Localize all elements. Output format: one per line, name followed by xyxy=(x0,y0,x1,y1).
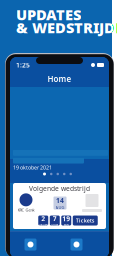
staticText: Home xyxy=(47,74,71,84)
staticText: 1:25 xyxy=(16,61,30,69)
staticText: 19 oktober 2021 xyxy=(13,164,52,171)
staticText: KRC Genk xyxy=(17,207,34,213)
staticText: UREN xyxy=(51,223,58,227)
staticText: 2 xyxy=(41,214,45,223)
staticText: Volgende wedstrijd xyxy=(29,184,90,193)
staticText: 19 oktober 2021 xyxy=(13,164,52,171)
staticText: 19 xyxy=(62,214,70,223)
staticText: & WEDSTRIJDEN xyxy=(16,18,118,37)
staticText: AUG xyxy=(55,205,64,210)
staticText: DAGEN xyxy=(39,223,48,227)
staticText: MIN xyxy=(64,223,69,227)
staticText: UPDATES xyxy=(16,5,81,24)
staticText: 14 xyxy=(56,196,64,205)
staticText: 7 xyxy=(53,214,57,223)
staticText: Tickets xyxy=(76,217,95,224)
